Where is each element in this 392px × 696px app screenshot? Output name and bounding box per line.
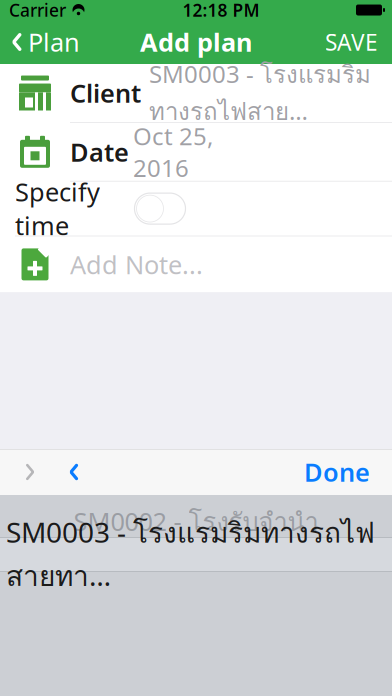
- staticText: 12:18 PM: [182, 0, 259, 21]
- staticText: Carrier: [9, 0, 66, 21]
- staticText: Specify time: [15, 175, 100, 242]
- staticText: SM0002 - โรงรับจำนำ: [73, 502, 318, 542]
- staticText: Client: [70, 76, 141, 110]
- button[interactable]: Done: [288, 450, 386, 494]
- button[interactable]: Client: [0, 64, 392, 123]
- staticText: Date: [70, 135, 129, 169]
- staticText: Add plan: [140, 25, 252, 59]
- button[interactable]: Add Note...: [0, 236, 392, 292]
- staticText: SM0003 - โรงแรมริมทางรถไฟสายทา…: [6, 511, 375, 598]
- staticText: Done: [304, 455, 370, 489]
- staticText: Plan: [28, 25, 80, 59]
- button[interactable]: Specify time: [0, 182, 392, 236]
- button[interactable]: Next field: [52, 450, 96, 494]
- staticText: Oct 25, 2016: [133, 120, 213, 184]
- staticText: Add Note...: [70, 248, 203, 281]
- button[interactable]: Plan: [0, 19, 80, 65]
- staticText: SAVE: [325, 27, 378, 57]
- button[interactable]: Date: [0, 123, 392, 182]
- button[interactable]: Previous field: [8, 450, 52, 494]
- button[interactable]: SAVE: [325, 21, 392, 63]
- staticText: SM0003 - โรงแรมริมทางรถไฟสาย…: [149, 56, 371, 130]
